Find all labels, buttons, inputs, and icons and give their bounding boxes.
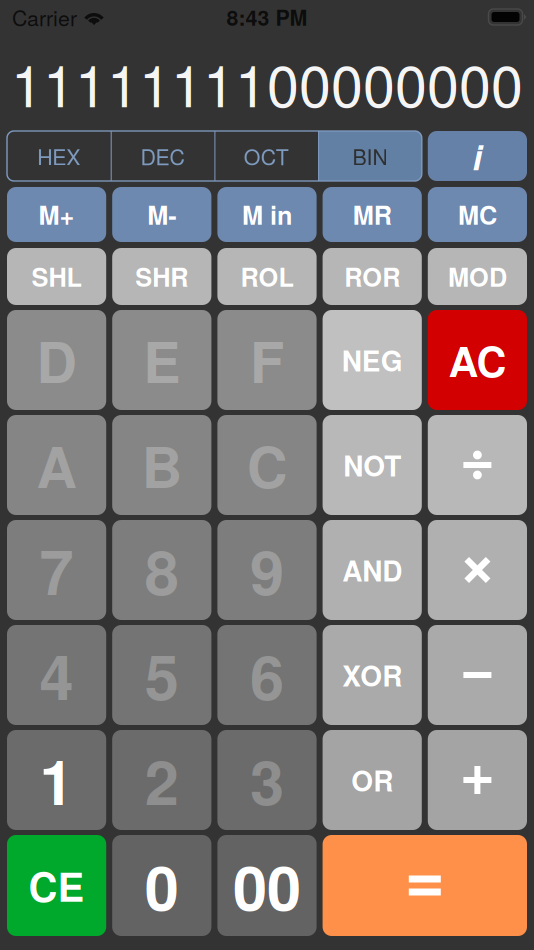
- staticText: 8: [145, 526, 179, 614]
- button[interactable]: MC: [428, 187, 527, 242]
- staticText: AC: [448, 330, 506, 390]
- button[interactable]: Info: [428, 131, 527, 181]
- staticText: M-: [147, 196, 176, 233]
- staticText: 00: [233, 842, 301, 929]
- staticText: 8:43 PM: [226, 2, 307, 32]
- button[interactable]: C: [217, 415, 317, 515]
- staticText: SHL: [32, 258, 82, 295]
- staticText: ROL: [240, 258, 293, 295]
- button[interactable]: Minus: [428, 625, 527, 725]
- button[interactable]: 9: [217, 520, 317, 620]
- staticText: C: [247, 425, 287, 505]
- button[interactable]: 0: [112, 835, 211, 936]
- staticText: BIN: [352, 141, 387, 171]
- button[interactable]: 00: [217, 835, 317, 936]
- staticText: 2: [145, 736, 179, 824]
- button[interactable]: 6: [217, 625, 317, 725]
- staticText: OR: [351, 760, 393, 800]
- staticText: M+: [39, 196, 75, 233]
- button[interactable]: F: [217, 310, 317, 410]
- staticText: SHR: [135, 258, 188, 295]
- staticText: MOD: [448, 258, 507, 295]
- staticText: E: [143, 320, 180, 400]
- staticText: A: [37, 425, 77, 505]
- button[interactable]: MR: [323, 187, 422, 242]
- button[interactable]: SHR: [112, 248, 211, 305]
- button[interactable]: M+: [7, 187, 106, 242]
- button[interactable]: A: [7, 415, 106, 515]
- staticText: NEG: [342, 340, 403, 380]
- staticText: 0: [145, 842, 179, 929]
- button[interactable]: HEX: [7, 131, 111, 181]
- button[interactable]: B: [112, 415, 211, 515]
- button[interactable]: 3: [217, 730, 317, 830]
- staticText: 6: [250, 631, 284, 719]
- staticText: 3: [250, 736, 284, 824]
- button[interactable]: AND: [323, 520, 422, 620]
- staticText: i: [472, 131, 482, 181]
- staticText: DEC: [141, 141, 185, 171]
- button[interactable]: 2: [112, 730, 211, 830]
- button[interactable]: AC: [428, 310, 527, 410]
- staticText: F: [250, 320, 284, 400]
- button[interactable]: MOD: [428, 248, 527, 305]
- staticText: ROR: [344, 258, 400, 295]
- button[interactable]: DEC: [111, 131, 214, 181]
- button[interactable]: NEG: [323, 310, 422, 410]
- staticText: 1: [40, 736, 74, 824]
- staticText: OCT: [244, 141, 289, 171]
- staticText: 7: [40, 526, 74, 614]
- button[interactable]: 7: [7, 520, 106, 620]
- button[interactable]: ROR: [323, 248, 422, 305]
- button[interactable]: Plus: [428, 730, 527, 830]
- staticText: 1111111100000000: [11, 41, 523, 123]
- staticText: NOT: [343, 445, 401, 485]
- button[interactable]: OR: [323, 730, 422, 830]
- button[interactable]: Equals: [323, 835, 527, 936]
- button[interactable]: SHL: [7, 248, 106, 305]
- button[interactable]: Multiply: [428, 520, 527, 620]
- button[interactable]: 5: [112, 625, 211, 725]
- staticText: Carrier: [12, 2, 77, 32]
- staticText: HEX: [37, 141, 80, 171]
- staticText: 9: [250, 526, 284, 614]
- staticText: AND: [342, 550, 402, 590]
- staticText: 4: [40, 631, 74, 719]
- staticText: M in: [242, 196, 292, 233]
- staticText: MR: [353, 196, 392, 233]
- button[interactable]: 8: [112, 520, 211, 620]
- button[interactable]: M in: [217, 187, 317, 242]
- button[interactable]: OCT: [214, 131, 318, 181]
- staticText: D: [37, 320, 77, 400]
- button[interactable]: 4: [7, 625, 106, 725]
- button[interactable]: Divide: [428, 415, 527, 515]
- staticText: B: [142, 425, 182, 505]
- button[interactable]: M-: [112, 187, 211, 242]
- button[interactable]: 1: [7, 730, 106, 830]
- staticText: CE: [29, 857, 85, 914]
- staticText: MC: [458, 196, 497, 233]
- staticText: 5: [145, 631, 179, 719]
- button[interactable]: BIN: [318, 131, 422, 181]
- button[interactable]: NOT: [323, 415, 422, 515]
- button[interactable]: CE: [7, 835, 106, 936]
- staticText: XOR: [342, 655, 402, 695]
- button[interactable]: XOR: [323, 625, 422, 725]
- button[interactable]: D: [7, 310, 106, 410]
- button[interactable]: ROL: [217, 248, 317, 305]
- button[interactable]: E: [112, 310, 211, 410]
